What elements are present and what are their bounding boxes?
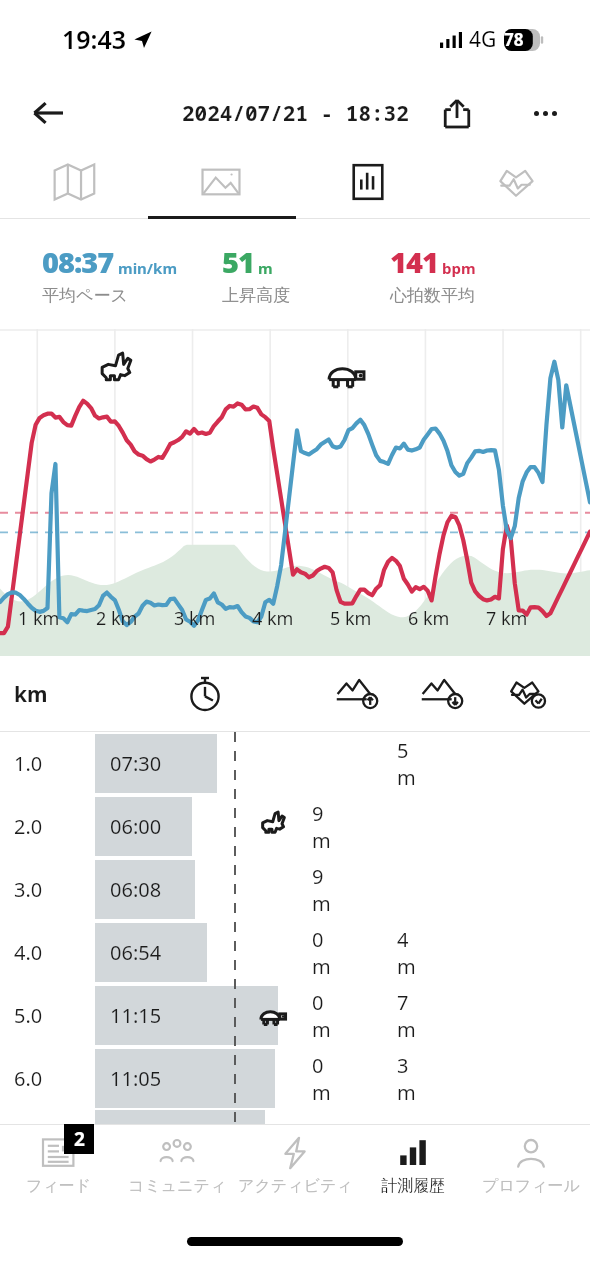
staticText: フィード xyxy=(26,1176,92,1196)
button[interactable]: 1.0 xyxy=(0,732,590,795)
button[interactable]: Charts xyxy=(294,148,442,216)
button[interactable]: 5.0 xyxy=(0,984,590,1047)
staticText: 1.0 xyxy=(14,750,43,777)
staticText: 3 km xyxy=(174,606,216,631)
button[interactable]: 6.0 xyxy=(0,1047,590,1110)
button[interactable]: Heart rate xyxy=(442,148,590,216)
staticText: アクティビティ xyxy=(238,1176,353,1196)
staticText: 6.0 xyxy=(14,1065,43,1092)
staticText: 計測履歴 xyxy=(381,1176,445,1196)
staticText: 心拍数平均 xyxy=(390,285,475,306)
staticText: 4.0 xyxy=(14,939,43,966)
staticText: 4G xyxy=(469,25,497,54)
staticText: 2 km xyxy=(96,606,138,631)
staticText: 10:30 xyxy=(110,1118,162,1145)
button[interactable]: 計測履歴 xyxy=(354,1125,472,1220)
staticText: 4 km xyxy=(252,606,294,631)
button[interactable]: コミュニティ xyxy=(118,1125,236,1220)
staticText: 2.0 xyxy=(14,813,43,840)
button[interactable]: アクティビティ xyxy=(236,1125,354,1220)
staticText: 78 xyxy=(504,28,524,51)
staticText: m xyxy=(258,258,273,278)
button[interactable]: More options xyxy=(520,88,570,138)
button[interactable]: 2 xyxy=(0,1125,118,1220)
staticText: 08:37 xyxy=(42,242,114,281)
staticText: 6 km xyxy=(408,606,450,631)
staticText: 平均ペース xyxy=(42,285,128,306)
button[interactable]: 7.0 xyxy=(0,1110,590,1152)
staticText: 06:08 xyxy=(110,876,162,903)
staticText: min/km xyxy=(118,258,178,278)
staticText: 06:54 xyxy=(110,939,162,966)
button[interactable]: Back xyxy=(22,87,74,139)
staticText: 7 km xyxy=(486,606,528,631)
button[interactable]: 4.0 xyxy=(0,921,590,984)
staticText: 2 xyxy=(74,1126,85,1152)
button[interactable]: Share xyxy=(432,88,482,138)
staticText: 06:00 xyxy=(110,813,162,840)
staticText: 2024/07/21 - 18:32 xyxy=(182,99,409,128)
staticText: km xyxy=(14,680,48,709)
staticText: bpm xyxy=(442,258,476,278)
staticText: 5 km xyxy=(330,606,372,631)
button[interactable]: 2.0 xyxy=(0,795,590,858)
button[interactable]: Photos xyxy=(147,148,294,216)
staticText: 19:43 xyxy=(62,22,127,56)
staticText: コミュニティ xyxy=(128,1176,227,1196)
staticText: 1 km xyxy=(18,606,60,631)
button[interactable]: プロフィール xyxy=(472,1125,590,1220)
staticText: 07:30 xyxy=(110,750,162,777)
staticText: 51 xyxy=(222,242,254,281)
staticText: 3.0 xyxy=(14,876,43,903)
staticText: 5.0 xyxy=(14,1002,43,1029)
staticText: 141 xyxy=(390,242,438,281)
staticText: 11:05 xyxy=(110,1065,162,1092)
button[interactable]: 3.0 xyxy=(0,858,590,921)
staticText: 7.0 xyxy=(14,1118,43,1145)
staticText: 11:15 xyxy=(110,1002,162,1029)
staticText: プロフィール xyxy=(482,1176,580,1196)
button[interactable]: Map xyxy=(0,148,147,216)
staticText: 上昇高度 xyxy=(222,285,290,306)
